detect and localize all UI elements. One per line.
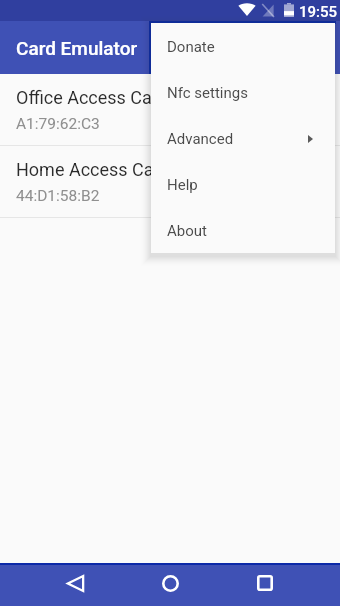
button[interactable]: Back bbox=[55, 563, 95, 603]
button[interactable]: Nfc settings bbox=[151, 70, 335, 116]
staticText: Office Access Card bbox=[16, 87, 168, 108]
button[interactable]: Help bbox=[151, 162, 335, 208]
staticText: Help bbox=[167, 176, 198, 194]
button[interactable]: Donate bbox=[151, 24, 335, 70]
staticText: About bbox=[167, 222, 207, 240]
staticText: Donate bbox=[167, 38, 215, 56]
button[interactable]: About bbox=[151, 208, 335, 254]
staticText: 19:55 bbox=[299, 3, 338, 21]
button[interactable]: Office Access Card bbox=[0, 74, 340, 146]
staticText: Nfc settings bbox=[167, 84, 248, 102]
staticText: Advanced bbox=[167, 130, 234, 148]
button[interactable]: Recent apps bbox=[245, 563, 285, 603]
button[interactable]: Home bbox=[150, 563, 190, 603]
button[interactable]: Advanced bbox=[151, 116, 335, 162]
staticText: Card Emulator bbox=[16, 37, 138, 59]
staticText: Home Access Card bbox=[16, 159, 170, 180]
staticText: A1:79:62:C3 bbox=[16, 115, 100, 133]
button[interactable]: Home Access Card bbox=[0, 146, 340, 218]
staticText: 44:D1:58:B2 bbox=[16, 187, 100, 205]
